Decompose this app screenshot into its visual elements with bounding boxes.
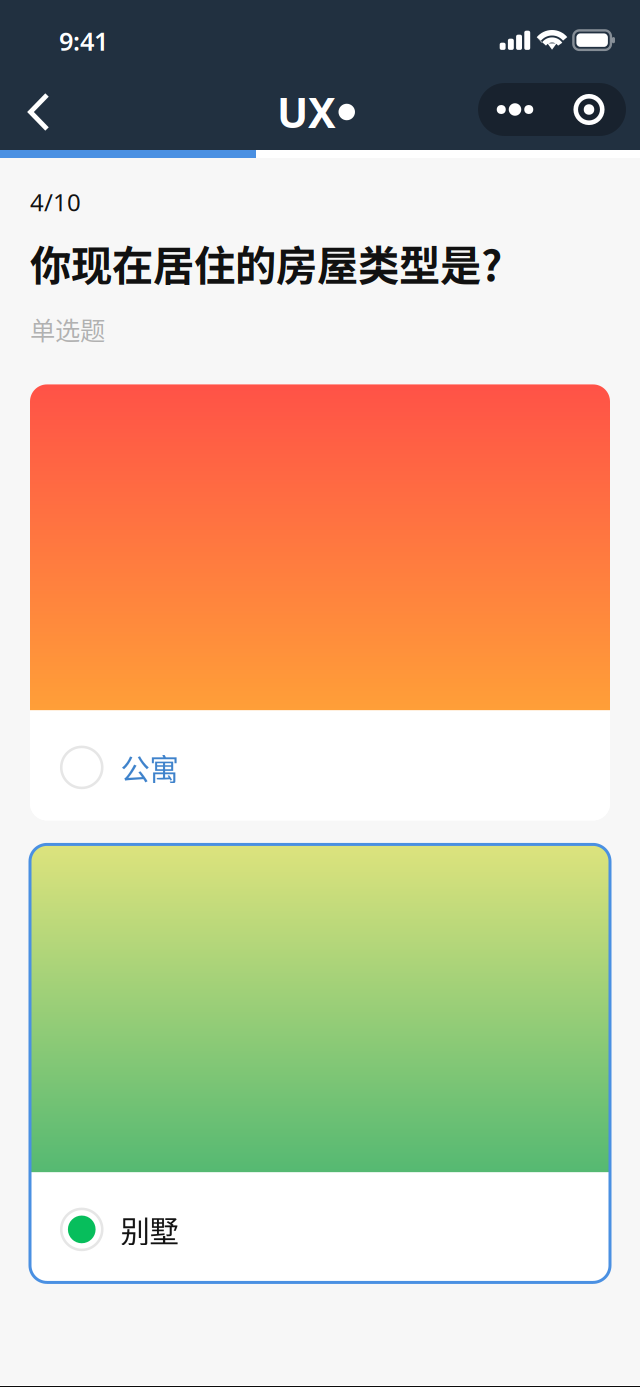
staticText: 公寓	[120, 746, 178, 789]
button[interactable]: 公寓	[30, 384, 610, 820]
staticText: 你现在居住的房屋类型是?	[30, 233, 502, 293]
staticText: 单选题	[30, 311, 105, 347]
button[interactable]: 别墅	[30, 844, 610, 1282]
button[interactable]: More options	[478, 83, 626, 141]
button[interactable]: Back	[0, 78, 81, 145]
staticText: 9:41	[59, 24, 108, 58]
staticText: 别墅	[120, 1208, 178, 1251]
staticText: UX	[277, 85, 336, 139]
staticText: 4/10	[30, 186, 81, 218]
